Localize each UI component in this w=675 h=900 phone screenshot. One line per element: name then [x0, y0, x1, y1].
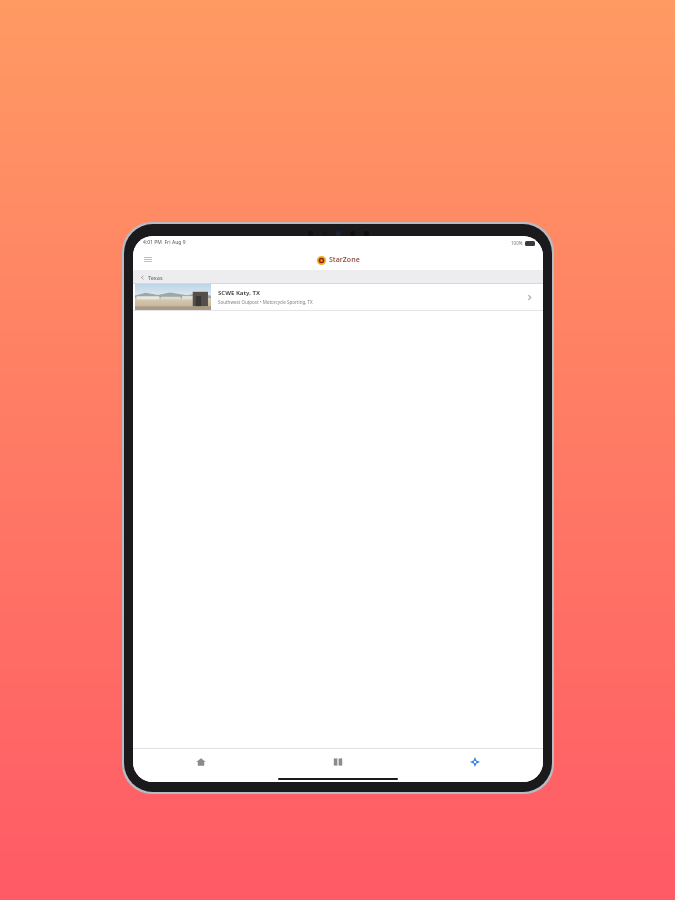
button[interactable]: Locate	[406, 749, 543, 775]
staticText: 100%	[511, 240, 523, 246]
button[interactable]: StarZone	[317, 255, 360, 265]
staticText: SCWE Katy, TX	[218, 289, 261, 297]
staticText: StarZone	[329, 255, 360, 265]
staticText: Southwest Outpost • Motorcycle Sporting,…	[218, 299, 313, 305]
button[interactable]: Guide	[269, 749, 406, 775]
button[interactable]: Home	[133, 749, 269, 775]
button[interactable]: Menu	[142, 255, 154, 264]
button[interactable]: SCWE Katy, TX	[133, 284, 543, 311]
staticText: Texas	[148, 274, 163, 281]
staticText: 4:01 PM Fri Aug 9	[143, 239, 186, 246]
